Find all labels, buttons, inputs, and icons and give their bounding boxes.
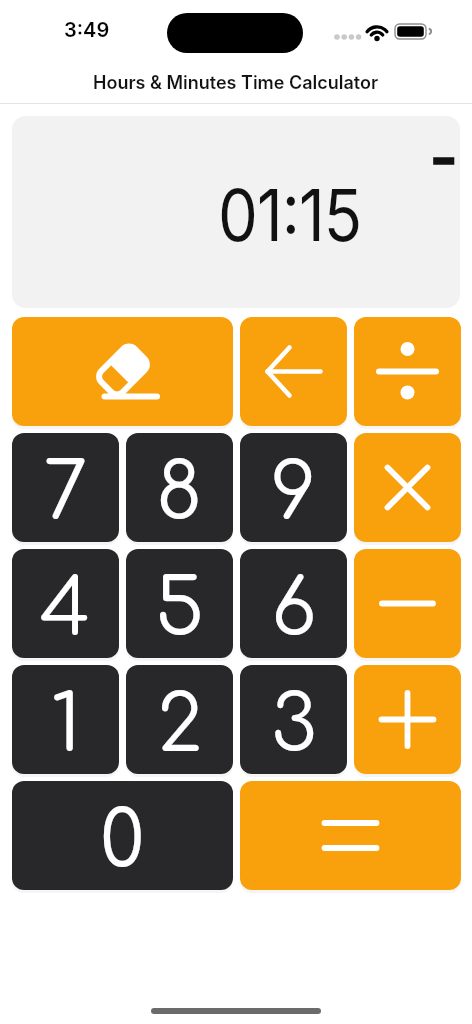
staticText: 5 bbox=[155, 566, 204, 653]
button[interactable]: 5 bbox=[126, 549, 233, 658]
button[interactable]: 2 bbox=[126, 665, 233, 774]
staticText: 0 bbox=[100, 798, 145, 885]
staticText: 3:49 bbox=[64, 18, 110, 42]
button[interactable]: 7 bbox=[12, 433, 119, 542]
button[interactable] bbox=[240, 317, 347, 426]
button[interactable]: 0 bbox=[12, 781, 233, 890]
staticText: 7 bbox=[43, 450, 88, 537]
button[interactable]: 8 bbox=[126, 433, 233, 542]
button[interactable]: 3 bbox=[240, 665, 347, 774]
button[interactable] bbox=[354, 433, 461, 542]
button[interactable]: 1 bbox=[12, 665, 119, 774]
staticText: 9 bbox=[271, 450, 317, 537]
staticText: 2 bbox=[157, 682, 203, 769]
button[interactable]: 6 bbox=[240, 549, 347, 658]
staticText: 8 bbox=[156, 450, 203, 537]
staticText: 3 bbox=[271, 682, 317, 769]
button[interactable] bbox=[354, 317, 461, 426]
staticText: Hours & Minutes Time Calculator bbox=[93, 72, 379, 94]
button[interactable]: 9 bbox=[240, 433, 347, 542]
button[interactable] bbox=[12, 317, 233, 426]
staticText: 6 bbox=[271, 566, 317, 653]
staticText: 01:15 bbox=[218, 172, 362, 258]
button[interactable] bbox=[354, 549, 461, 658]
staticText: 1 bbox=[51, 682, 81, 769]
staticText: 4 bbox=[40, 566, 91, 653]
button[interactable] bbox=[354, 665, 461, 774]
button[interactable] bbox=[240, 781, 461, 890]
button[interactable]: 4 bbox=[12, 549, 119, 658]
